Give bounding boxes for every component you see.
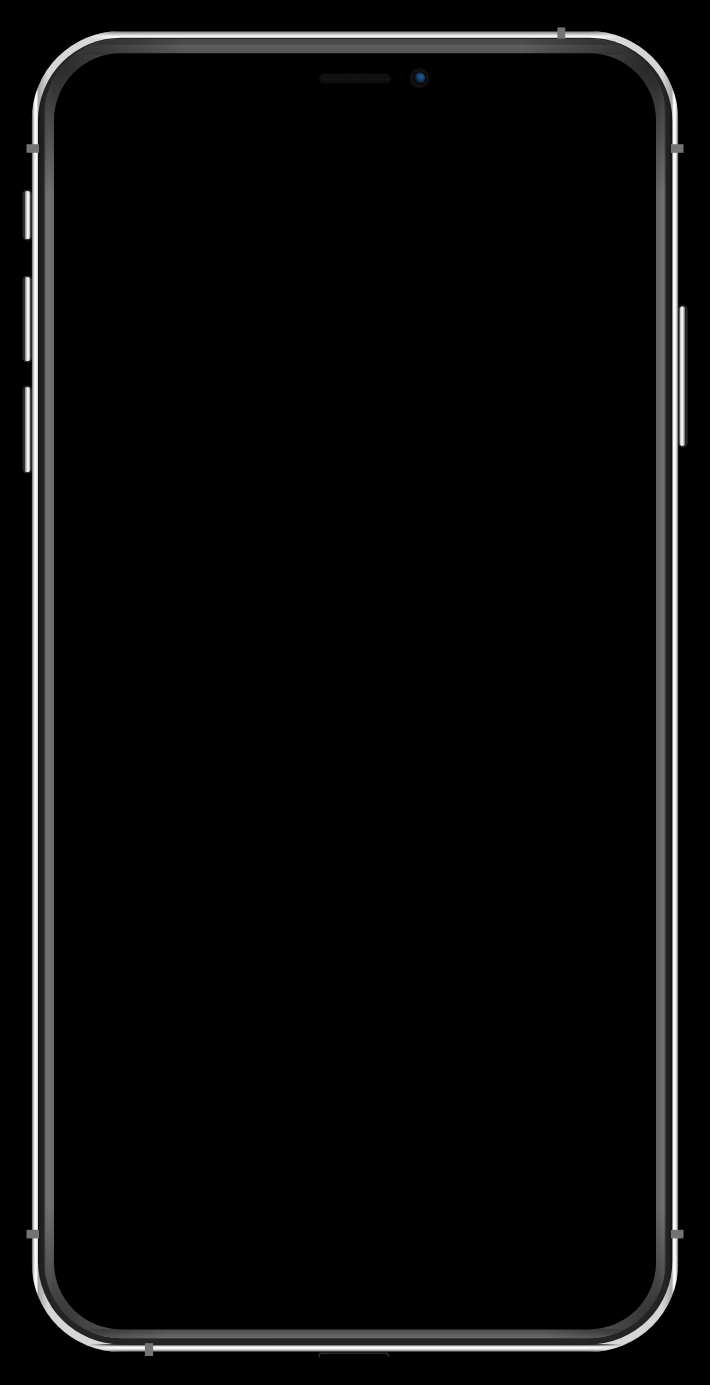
button[interactable]: Volume up bbox=[18, 271, 40, 367]
button[interactable]: Phone screen bbox=[54, 53, 656, 1329]
button[interactable]: Front camera bbox=[406, 64, 434, 92]
button[interactable]: Power bbox=[670, 300, 694, 452]
button[interactable]: Volume down bbox=[18, 381, 40, 478]
button[interactable]: Earpiece speaker bbox=[312, 66, 398, 92]
button[interactable]: Ring / silent switch bbox=[18, 185, 40, 245]
